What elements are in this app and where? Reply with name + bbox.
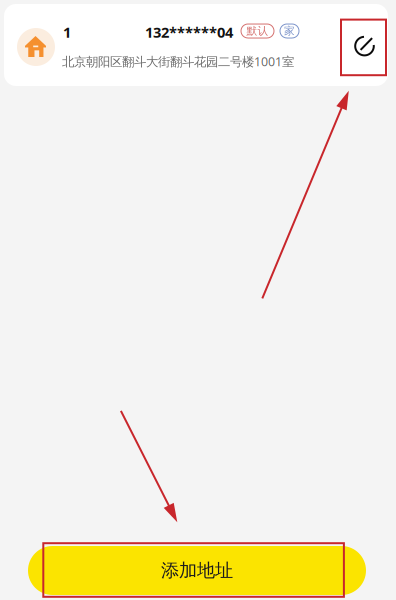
- staticText: 北京朝阳区翻斗大街翻斗花园二号楼1001室: [62, 53, 294, 70]
- staticText: 默认: [246, 24, 268, 38]
- button[interactable]: 编辑地址: [342, 19, 387, 74]
- button[interactable]: 添加地址: [28, 546, 366, 595]
- staticText: 家: [284, 24, 295, 38]
- staticText: 1: [63, 22, 71, 42]
- staticText: 添加地址: [161, 559, 233, 582]
- staticText: 132******04: [145, 22, 233, 42]
